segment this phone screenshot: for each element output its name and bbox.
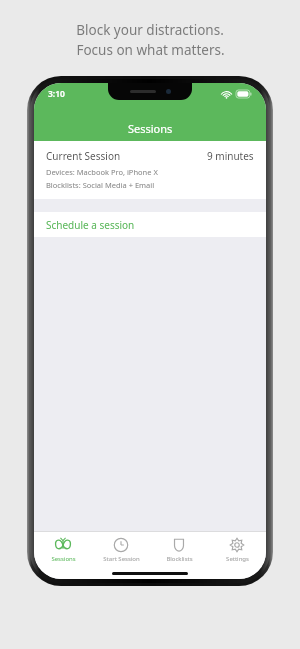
staticText: 9 minutes bbox=[207, 149, 254, 163]
button[interactable]: Settings bbox=[208, 535, 266, 565]
staticText: 3:10 bbox=[48, 88, 65, 100]
button[interactable]: Schedule a session bbox=[34, 212, 266, 237]
staticText: Blocklists bbox=[166, 555, 193, 563]
staticText: Settings bbox=[226, 555, 249, 563]
staticText: Devices: Macbook Pro, iPhone X bbox=[46, 167, 158, 177]
staticText: Blocklists: Social Media + Email bbox=[46, 180, 155, 190]
staticText: Sessions bbox=[128, 121, 173, 136]
button[interactable]: Start Session bbox=[92, 535, 150, 565]
staticText: Sessions bbox=[51, 555, 76, 563]
staticText: Focus on what matters. bbox=[76, 41, 225, 59]
staticText: Start Session bbox=[103, 555, 140, 563]
staticText: Block your distractions. bbox=[76, 21, 224, 39]
button[interactable]: Sessions bbox=[34, 535, 92, 565]
staticText: Current Session bbox=[46, 149, 121, 163]
staticText: Schedule a session bbox=[46, 218, 135, 232]
button[interactable]: Blocklists bbox=[150, 535, 208, 565]
button[interactable]: Current Session bbox=[34, 141, 266, 199]
